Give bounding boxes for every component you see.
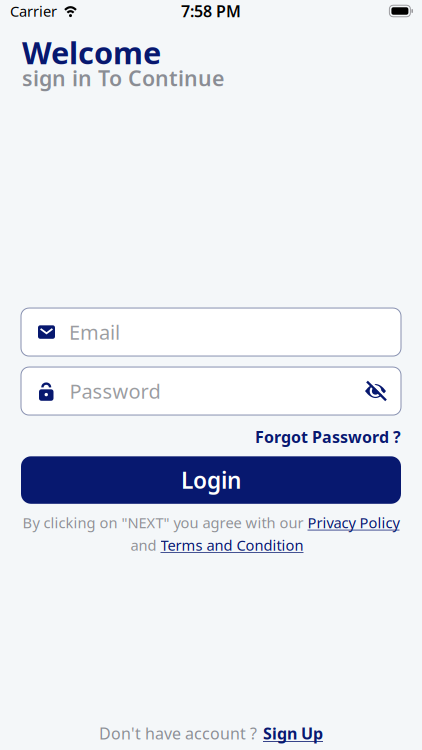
staticText: Don't have account ? — [99, 723, 257, 744]
button[interactable] — [364, 381, 387, 401]
button[interactable]: Email — [21, 308, 401, 356]
staticText: Sign Up — [263, 723, 323, 744]
staticText: Welcome — [22, 32, 161, 73]
button[interactable]: Sign Up — [263, 723, 323, 744]
staticText: Email — [69, 319, 120, 345]
button[interactable]: Terms and Condition — [160, 535, 303, 555]
staticText: Login — [181, 465, 241, 495]
staticText: Carrier — [10, 1, 57, 21]
staticText: Terms and Condition — [160, 535, 303, 555]
staticText: By clicking on "NEXT" you agree with our — [22, 513, 303, 532]
staticText: Forgot Password ? — [255, 426, 401, 447]
staticText: Password — [69, 378, 160, 404]
staticText: 7:58 PM — [181, 0, 241, 22]
button[interactable]: Password — [21, 367, 401, 415]
staticText: Privacy Policy — [307, 513, 399, 532]
staticText: sign in To Continue — [22, 64, 224, 92]
button[interactable]: Privacy Policy — [307, 513, 399, 532]
button[interactable]: Forgot Password ? — [255, 426, 401, 447]
staticText: and — [130, 535, 156, 555]
button[interactable]: Login — [21, 456, 401, 504]
